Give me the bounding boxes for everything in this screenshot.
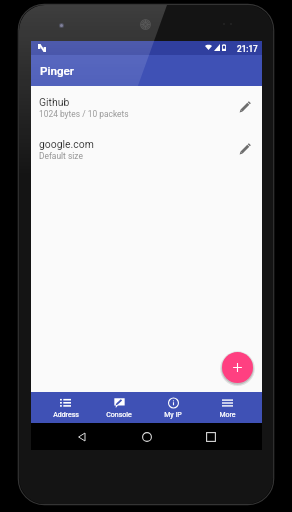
button[interactable]: google.com bbox=[31, 128, 262, 170]
button[interactable]: Edit bbox=[234, 138, 256, 160]
staticText: Default size bbox=[39, 151, 83, 161]
button[interactable]: Home bbox=[137, 427, 157, 447]
button[interactable]: Github bbox=[31, 86, 262, 128]
staticText: google.com bbox=[39, 138, 94, 150]
staticText: 21:17 bbox=[237, 44, 258, 54]
button[interactable]: More bbox=[200, 392, 254, 423]
button[interactable]: Address bbox=[39, 392, 92, 423]
staticText: Console bbox=[106, 411, 132, 419]
button[interactable]: Edit bbox=[234, 96, 256, 118]
button[interactable]: My IP bbox=[146, 392, 200, 423]
staticText: More bbox=[219, 411, 236, 419]
button[interactable]: Recents bbox=[201, 427, 221, 447]
staticText: Address bbox=[53, 411, 79, 419]
staticText: Pinger bbox=[40, 64, 74, 78]
button[interactable]: Back bbox=[72, 427, 92, 447]
staticText: Github bbox=[39, 96, 70, 108]
staticText: My IP bbox=[164, 411, 182, 419]
staticText: 1024 bytes / 10 packets bbox=[39, 109, 129, 119]
button[interactable]: Add bbox=[222, 352, 253, 383]
button[interactable]: Console bbox=[92, 392, 146, 423]
